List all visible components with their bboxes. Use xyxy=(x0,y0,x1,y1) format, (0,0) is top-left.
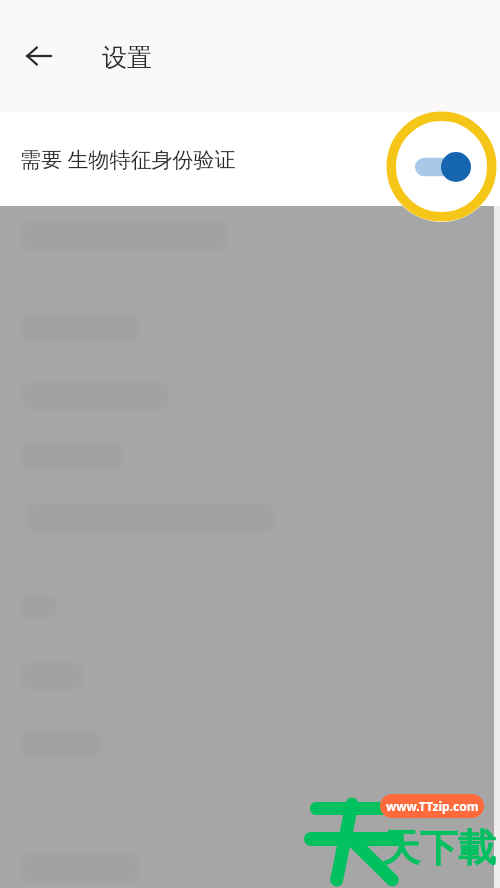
staticText: 设置 xyxy=(102,42,152,73)
button[interactable]: 需要 生物特征身份验证 xyxy=(0,112,500,206)
button[interactable]: 返回 xyxy=(15,32,63,80)
staticText: 需要 生物特征身份验证 xyxy=(20,145,236,174)
staticText: www.TTzip.com xyxy=(386,798,479,814)
button[interactable]: 需要生物特征身份验证开关 xyxy=(385,110,498,223)
staticText: 天下載 xyxy=(382,824,496,872)
